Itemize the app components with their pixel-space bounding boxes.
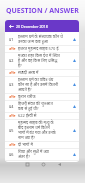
button[interactable]: Share	[72, 104, 77, 109]
staticText: मुहम्मद साहब की मृत्यु के बाद इस्लाम धर्…	[18, 120, 56, 140]
button[interactable]: प्र3	[5, 77, 79, 93]
staticText: उत्तर	[9, 70, 16, 75]
staticText: QUESTION / ANSWER	[6, 6, 79, 16]
button[interactable]: उत्तर	[5, 113, 79, 119]
button[interactable]: Back	[55, 160, 63, 168]
staticText: उत्तर	[9, 142, 16, 147]
button[interactable]: Share	[72, 37, 77, 42]
button[interactable]: प्र6	[5, 149, 79, 160]
staticText: प्र1	[9, 37, 14, 42]
button[interactable]: Share	[72, 152, 77, 157]
button[interactable]: Back	[8, 23, 14, 29]
staticText: प्र3	[9, 82, 14, 87]
staticText: प्र4	[9, 104, 14, 109]
button[interactable]: प्र1	[5, 34, 79, 45]
staticText: शिया और सुन्नी में क्या अंतर है?	[18, 149, 49, 159]
staticText: सऊदी अरब में	[18, 70, 39, 75]
staticText: उत्तर	[9, 113, 16, 118]
staticText: इस्लाम धर्म का पवित्र ग्रंथ कौन सा है और…	[18, 77, 59, 92]
button[interactable]: उत्तर	[5, 94, 79, 100]
button[interactable]: Share	[72, 58, 77, 63]
button[interactable]: उत्तर	[5, 70, 79, 76]
button[interactable]: Back	[5, 20, 79, 32]
button[interactable]: प्र2	[5, 53, 79, 69]
button[interactable]: Recent apps	[23, 160, 31, 168]
button[interactable]: उत्तर	[5, 142, 79, 148]
staticText: मक्का शहर किस देश में स्थित है और वह किस…	[18, 53, 60, 68]
staticText: 622 ईस्वी से	[18, 113, 37, 118]
button[interactable]: प्र4	[5, 101, 79, 112]
staticText: प्र6	[9, 152, 14, 157]
button[interactable]: Home	[39, 160, 47, 168]
staticText: दो भागों में	[18, 142, 33, 147]
button[interactable]: Share	[72, 82, 77, 87]
staticText: 20 December 2018	[16, 24, 48, 29]
staticText: इस्लाम धर्म के संस्थापक कौन थे उनका जन्म…	[18, 34, 63, 44]
staticText: हिजरी संवत की शुरुआत कब से हुई थी?	[18, 101, 53, 111]
staticText: प्र2	[9, 58, 14, 63]
staticText: हजरत मुहम्मद साहब 570 ई.	[18, 46, 60, 51]
staticText: कुरान शरीफ	[18, 94, 36, 99]
button[interactable]: उत्तर	[5, 46, 79, 52]
staticText: उत्तर	[9, 46, 16, 51]
button[interactable]: Share	[72, 128, 77, 133]
staticText: प्र5	[9, 128, 14, 133]
button[interactable]: प्र5	[5, 120, 79, 141]
staticText: उत्तर	[9, 94, 16, 99]
